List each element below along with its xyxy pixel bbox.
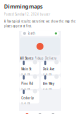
staticText: Pickup (34, 57, 43, 60)
staticText: Cedar Ln (21, 96, 34, 100)
button[interactable]: Main St (19, 61, 39, 74)
staticText: Search (27, 32, 35, 35)
staticText: All Stores (20, 57, 33, 60)
staticText: A few typical results: every time we sho… (4, 20, 76, 23)
button[interactable]: Pine Rd (19, 76, 39, 89)
staticText: Main St (21, 67, 31, 71)
staticText: Delivery (45, 57, 56, 60)
staticText: Posted Sunday 12, 2024 by user (4, 13, 50, 16)
staticText: 0.4 mi (21, 72, 30, 76)
staticText: Elm Way (43, 82, 54, 85)
staticText: Dimming maps (4, 3, 43, 10)
button[interactable]: More (46, 112, 59, 114)
button[interactable]: Order (20, 112, 33, 114)
staticText: 0.4 mi (21, 101, 30, 105)
staticText: places appear at first. (4, 24, 32, 28)
staticText: Oak Ave (43, 67, 55, 71)
button[interactable]: Scan (33, 112, 46, 114)
button[interactable]: Cedar Ln (19, 90, 39, 103)
staticText: Pine Rd (21, 82, 33, 85)
staticText: 0.4 mi (21, 87, 30, 90)
staticText: 0.4 mi (43, 87, 52, 90)
staticText: 0.4 mi (43, 72, 52, 76)
button[interactable]: Elm Way (41, 76, 61, 89)
button[interactable]: Oak Ave (41, 61, 61, 74)
